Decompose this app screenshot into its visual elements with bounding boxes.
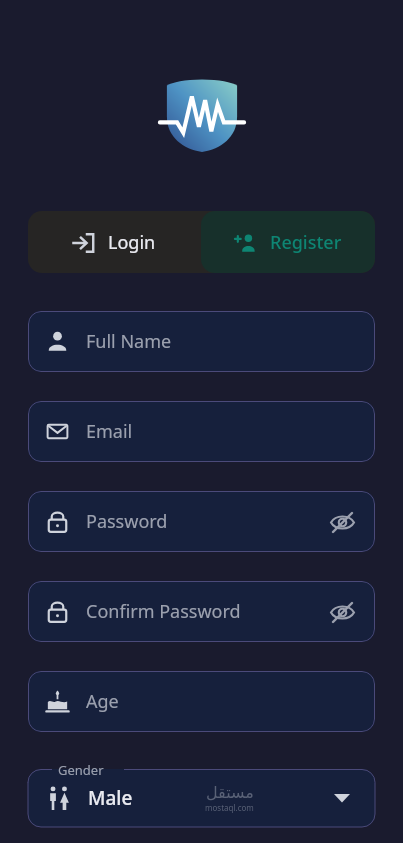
staticText: Password	[86, 509, 168, 534]
button[interactable]: Age	[28, 671, 375, 732]
button[interactable]: Login	[28, 211, 201, 273]
button[interactable]: Full Name	[28, 311, 375, 372]
staticText: Login	[108, 230, 156, 255]
button[interactable]: Email	[28, 401, 375, 462]
button[interactable]: Confirm Password	[28, 581, 375, 642]
button[interactable]: Register	[201, 211, 375, 273]
button[interactable]: Show password	[327, 597, 357, 627]
staticText: Male	[88, 785, 133, 811]
staticText: Register	[270, 230, 342, 255]
staticText: mostaql.com	[205, 802, 254, 813]
button[interactable]: Show password	[327, 507, 357, 537]
button[interactable]	[28, 769, 375, 827]
button[interactable]: Password	[28, 491, 375, 552]
staticText: Gender	[58, 761, 104, 779]
staticText: Email	[86, 419, 133, 444]
staticText: مستقل	[206, 783, 254, 802]
staticText: Age	[86, 689, 119, 714]
staticText: Full Name	[86, 329, 172, 354]
staticText: Confirm Password	[86, 599, 241, 624]
button[interactable]: Open gender dropdown	[327, 783, 357, 813]
